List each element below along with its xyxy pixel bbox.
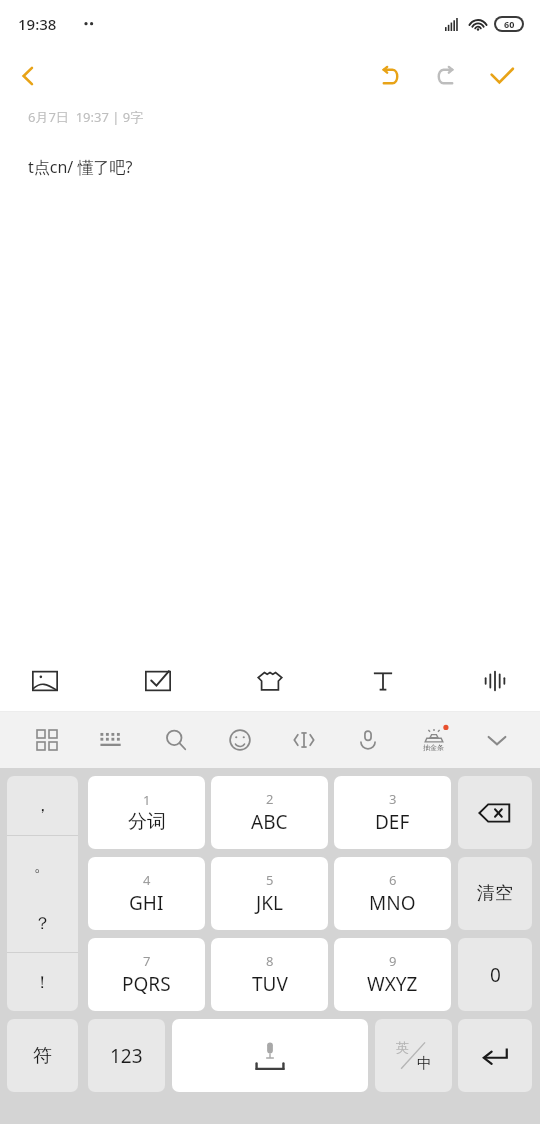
button[interactable]: Clear <box>458 857 532 930</box>
staticText: 6月7日 19:37 | 9字 <box>28 108 144 126</box>
staticText: WXYZ <box>367 971 418 997</box>
button[interactable]: Done <box>474 48 530 104</box>
button[interactable]: Comma <box>7 776 78 835</box>
button[interactable]: Backspace <box>458 776 532 849</box>
staticText: 3 <box>389 790 397 808</box>
staticText: 19:38 <box>18 14 57 34</box>
button[interactable]: Symbols <box>7 1019 78 1092</box>
button[interactable]: Voice input <box>347 719 389 761</box>
staticText: 分词 <box>128 810 166 834</box>
button[interactable]: Period <box>7 836 78 894</box>
button[interactable]: Sticker <box>239 650 301 712</box>
staticText: GHI <box>129 890 164 916</box>
staticText: 9 <box>389 952 397 970</box>
staticText: JKL <box>256 890 283 916</box>
staticText: 60 <box>504 18 515 30</box>
button[interactable]: Checklist <box>127 650 189 712</box>
staticText: 符 <box>33 1044 52 1068</box>
staticText: ， <box>34 795 51 816</box>
staticText: 6 <box>389 871 397 889</box>
button[interactable]: Zero <box>458 938 532 1011</box>
staticText: 。 <box>34 855 51 876</box>
staticText: 123 <box>110 1043 143 1069</box>
button[interactable]: Edit cursor <box>283 719 325 761</box>
button[interactable]: 5 <box>211 857 328 930</box>
staticText: DEF <box>375 809 410 835</box>
staticText: t点cn/ 懂了吧? <box>28 156 133 178</box>
button[interactable]: Redo <box>418 48 474 104</box>
staticText: 2 <box>266 790 274 808</box>
button[interactable]: 7 <box>88 938 205 1011</box>
staticText: 7 <box>143 952 151 970</box>
button[interactable]: Back <box>0 48 56 104</box>
staticText: 4 <box>143 871 151 889</box>
button[interactable]: 6 <box>334 857 451 930</box>
button[interactable]: Hide keyboard <box>476 719 518 761</box>
staticText: 1 <box>143 791 151 809</box>
staticText: 5 <box>266 871 274 889</box>
staticText: TUV <box>252 971 288 997</box>
button[interactable]: Apps <box>26 719 68 761</box>
button[interactable]: 1 <box>88 776 205 849</box>
button[interactable]: 9 <box>334 938 451 1011</box>
button[interactable]: Insert image <box>14 650 76 712</box>
button[interactable]: 4 <box>88 857 205 930</box>
button[interactable]: Text style <box>352 650 414 712</box>
staticText: ？ <box>34 913 51 934</box>
staticText: PQRS <box>122 971 171 997</box>
staticText: ABC <box>251 809 288 835</box>
button[interactable]: Exclamation mark <box>7 953 78 1011</box>
button[interactable]: 3 <box>334 776 451 849</box>
button[interactable]: Emoji <box>219 719 261 761</box>
staticText: 英 <box>396 1039 409 1055</box>
button[interactable]: Numbers <box>88 1019 165 1092</box>
button[interactable]: Undo <box>362 48 418 104</box>
staticText: MNO <box>369 890 416 916</box>
staticText: 抽金条 <box>423 743 444 752</box>
staticText: 清空 <box>477 882 513 905</box>
staticText: 0 <box>490 962 501 988</box>
button[interactable]: Question mark <box>7 894 78 952</box>
button[interactable]: Search <box>155 719 197 761</box>
button[interactable]: Voice <box>464 650 526 712</box>
button[interactable]: 2 <box>211 776 328 849</box>
button[interactable]: Language <box>375 1019 452 1092</box>
button[interactable]: Gold bar <box>412 719 454 761</box>
button[interactable]: Enter <box>458 1019 532 1092</box>
button[interactable]: 8 <box>211 938 328 1011</box>
button[interactable]: Keyboard layout <box>90 719 132 761</box>
button[interactable]: Space <box>172 1019 368 1092</box>
staticText: 中 <box>417 1054 432 1073</box>
staticText: ！ <box>34 972 51 993</box>
staticText: 8 <box>266 952 274 970</box>
